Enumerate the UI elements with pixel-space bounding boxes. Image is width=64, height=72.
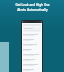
button[interactable] — [23, 27, 41, 32]
button[interactable] — [22, 48, 42, 53]
staticText: Alerts Automatically — [17, 8, 48, 12]
button[interactable] — [22, 68, 42, 72]
button[interactable] — [22, 33, 42, 38]
button[interactable] — [22, 58, 42, 63]
button[interactable] — [22, 38, 42, 43]
button[interactable] — [22, 63, 42, 68]
button[interactable] — [22, 53, 42, 58]
button[interactable]: App preview on phone — [21, 20, 43, 72]
staticText: Get Leak and High Use — [15, 3, 50, 7]
button[interactable] — [22, 43, 42, 48]
